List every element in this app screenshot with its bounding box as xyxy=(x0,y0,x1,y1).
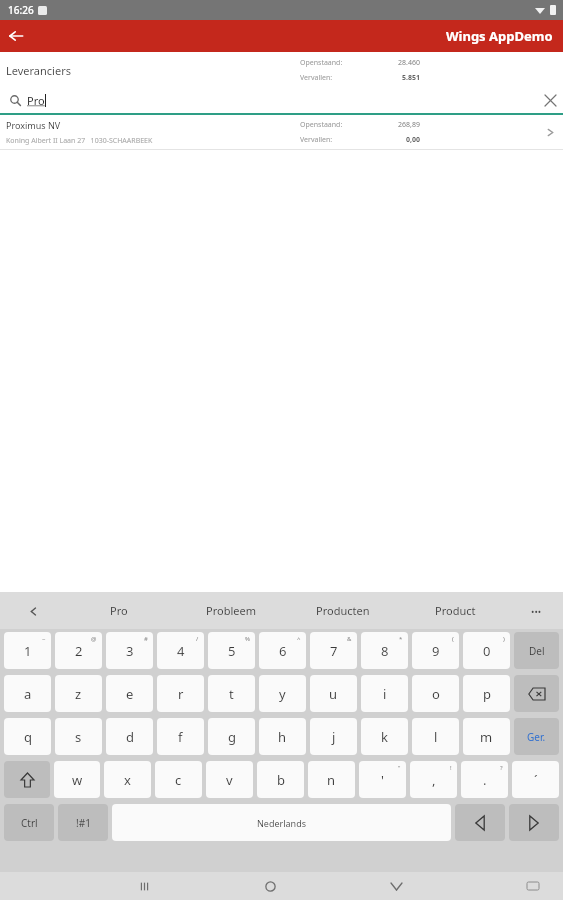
staticText: b xyxy=(277,771,285,789)
staticText: l xyxy=(434,728,438,746)
button[interactable]: o xyxy=(412,675,459,712)
button[interactable]: Proximus NV xyxy=(0,115,563,149)
staticText: / xyxy=(196,635,199,643)
button[interactable]: 0 xyxy=(463,632,510,669)
button[interactable]: a xyxy=(4,675,51,712)
button[interactable]: 5 xyxy=(208,632,255,669)
button[interactable]: Keyboard layout xyxy=(513,872,553,900)
staticText: t xyxy=(229,685,234,703)
button[interactable]: m xyxy=(463,718,510,755)
button[interactable]: bksp xyxy=(514,675,559,712)
button[interactable]: shift xyxy=(4,761,50,798)
button[interactable]: Producten xyxy=(287,592,399,629)
staticText: Vervallen: xyxy=(300,73,368,83)
button[interactable]: q xyxy=(4,718,51,755)
button[interactable]: ´ xyxy=(512,761,559,798)
button[interactable]: 7 xyxy=(310,632,357,669)
button[interactable]: Clear xyxy=(537,88,563,113)
button[interactable]: Hide keyboard xyxy=(372,872,420,900)
staticText: m xyxy=(480,728,493,746)
staticText: Del xyxy=(529,644,545,658)
button[interactable]: f xyxy=(157,718,204,755)
button[interactable]: x xyxy=(104,761,151,798)
staticText: 4 xyxy=(177,642,185,660)
staticText: x xyxy=(124,771,131,789)
button[interactable]: i xyxy=(361,675,408,712)
staticText: " xyxy=(398,764,401,772)
button[interactable]: Search xyxy=(0,88,563,113)
button[interactable]: Del xyxy=(514,632,559,669)
staticText: 7 xyxy=(330,642,338,660)
button[interactable]: b xyxy=(257,761,304,798)
button[interactable]: r xyxy=(157,675,204,712)
staticText: !#1 xyxy=(76,816,91,830)
button[interactable]: Nederlands xyxy=(112,804,451,841)
staticText: Ger. xyxy=(527,730,546,744)
staticText: Pro xyxy=(110,603,128,618)
button[interactable]: 6 xyxy=(259,632,306,669)
button[interactable]: z xyxy=(55,675,102,712)
staticText: p xyxy=(483,685,491,703)
button[interactable]: left xyxy=(455,804,505,841)
button[interactable]: n xyxy=(308,761,355,798)
staticText: d xyxy=(126,728,134,746)
staticText: k xyxy=(381,728,388,746)
button[interactable]: Ger. xyxy=(514,718,559,755)
button[interactable]: . xyxy=(461,761,508,798)
button[interactable]: h xyxy=(259,718,306,755)
staticText: 0,00 xyxy=(368,135,420,145)
staticText: % xyxy=(245,635,250,643)
staticText: 6 xyxy=(279,642,287,660)
button[interactable]: 1 xyxy=(4,632,51,669)
button[interactable]: g xyxy=(208,718,255,755)
button[interactable]: k xyxy=(361,718,408,755)
staticText: 3 xyxy=(126,642,134,660)
button[interactable]: ' xyxy=(359,761,406,798)
button[interactable]: right xyxy=(509,804,559,841)
button[interactable]: c xyxy=(155,761,202,798)
button[interactable]: v xyxy=(206,761,253,798)
button[interactable]: 8 xyxy=(361,632,408,669)
staticText: j xyxy=(332,728,336,746)
button[interactable]: e xyxy=(106,675,153,712)
button[interactable]: d xyxy=(106,718,153,755)
button[interactable]: 9 xyxy=(412,632,459,669)
button[interactable]: y xyxy=(259,675,306,712)
button[interactable]: 4 xyxy=(157,632,204,669)
button[interactable]: t xyxy=(208,675,255,712)
button[interactable]: p xyxy=(463,675,510,712)
staticText: 268,89 xyxy=(368,120,420,130)
button[interactable]: , xyxy=(410,761,457,798)
button[interactable]: s xyxy=(55,718,102,755)
button[interactable]: Home xyxy=(246,872,294,900)
staticText: z xyxy=(75,685,82,703)
button[interactable]: u xyxy=(310,675,357,712)
staticText: i xyxy=(383,685,387,703)
staticText: Probleem xyxy=(206,603,256,618)
button[interactable]: 2 xyxy=(55,632,102,669)
button[interactable]: l xyxy=(412,718,459,755)
staticText: a xyxy=(24,685,32,703)
staticText: Koning Albert II Laan 27 1030-SCHAARBEEK xyxy=(6,136,153,146)
button[interactable]: Probleem xyxy=(175,592,287,629)
button[interactable]: Product xyxy=(399,592,511,629)
button[interactable]: Pro xyxy=(62,592,175,629)
staticText: . xyxy=(483,771,487,789)
staticText: r xyxy=(178,685,184,703)
button[interactable]: 3 xyxy=(106,632,153,669)
button[interactable]: Recents xyxy=(120,872,168,900)
staticText: Producten xyxy=(316,603,370,618)
button[interactable]: !#1 xyxy=(58,804,108,841)
staticText: ^ xyxy=(297,635,301,643)
staticText: ~ xyxy=(42,635,46,643)
staticText: v xyxy=(226,771,233,789)
button[interactable]: j xyxy=(310,718,357,755)
button[interactable]: w xyxy=(54,761,100,798)
button[interactable]: More options xyxy=(525,600,547,622)
staticText: 0 xyxy=(483,642,491,660)
button[interactable]: Ctrl xyxy=(4,804,54,841)
button[interactable]: Previous suggestions xyxy=(22,600,44,622)
button[interactable]: Back xyxy=(0,20,32,52)
staticText: c xyxy=(175,771,182,789)
staticText: ) xyxy=(503,635,505,643)
